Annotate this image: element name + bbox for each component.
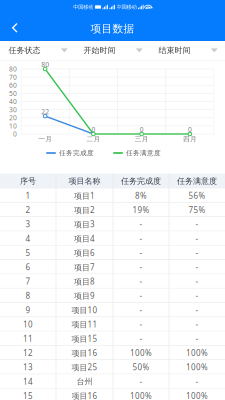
staticText: 40 — [9, 97, 17, 106]
staticText: - — [195, 219, 198, 229]
staticText: 6 — [25, 262, 30, 272]
staticText: 10 — [9, 121, 17, 130]
staticText: 5 — [25, 247, 30, 258]
staticText: 任务满意度 — [126, 149, 161, 157]
staticText: 0 — [140, 125, 144, 134]
staticText: 1 — [25, 190, 30, 201]
staticText: - — [139, 290, 142, 301]
staticText: 20 — [9, 113, 17, 122]
staticText: 2 — [25, 205, 30, 215]
staticText: 13 — [23, 362, 33, 372]
staticText: - — [195, 262, 198, 272]
staticText: 0 — [13, 130, 17, 138]
staticText: 项目16 — [71, 348, 97, 358]
staticText: 项目1 — [74, 190, 95, 201]
button[interactable]: 开始时间 — [75, 41, 150, 60]
staticText: 22 — [41, 107, 49, 116]
staticText: 台州 — [76, 377, 92, 386]
staticText: 80 — [9, 65, 17, 73]
staticText: - — [139, 219, 142, 229]
staticText: 项目16 — [71, 390, 97, 400]
staticText: 项目15 — [71, 333, 97, 344]
staticText: 4 — [25, 233, 30, 244]
staticText: 二月 — [86, 135, 100, 143]
staticText: 项目名称 — [68, 176, 100, 186]
staticText: 15 — [23, 390, 33, 400]
staticText: 一月 — [38, 135, 52, 143]
staticText: 中国移动 — [73, 4, 93, 10]
button[interactable]: 任务状态 — [0, 41, 75, 60]
staticText: 中国移动 — [117, 4, 137, 10]
staticText: 项目3 — [74, 219, 95, 229]
staticText: 100% — [130, 390, 152, 400]
staticText: 项目25 — [71, 362, 97, 372]
staticText: - — [139, 247, 142, 258]
staticText: 项目10 — [71, 305, 97, 315]
staticText: 10 — [23, 319, 33, 330]
staticText: 80 — [41, 60, 49, 69]
staticText: 12 — [23, 348, 33, 358]
staticText: 任务满意度 — [177, 176, 217, 186]
staticText: 70 — [9, 73, 17, 82]
staticText: 项目4 — [74, 233, 95, 244]
staticText: 任务完成度 — [121, 176, 161, 186]
staticText: 四月 — [183, 135, 197, 143]
staticText: 项目2 — [74, 205, 95, 215]
staticText: 项目6 — [74, 247, 95, 258]
staticText: - — [139, 276, 142, 287]
staticText: 9 — [25, 305, 30, 315]
staticText: 8% — [135, 190, 147, 201]
staticText: 100% — [186, 390, 208, 400]
staticText: 50 — [9, 89, 17, 98]
staticText: 56% — [188, 190, 205, 201]
staticText: - — [139, 319, 142, 330]
staticText: - — [195, 376, 198, 387]
staticText: - — [195, 333, 198, 344]
staticText: 任务状态 — [8, 45, 40, 55]
staticText: 14 — [23, 376, 33, 387]
staticText: 0 — [91, 125, 95, 134]
staticText: - — [195, 290, 198, 301]
staticText: - — [139, 305, 142, 315]
staticText: 开始时间 — [83, 45, 115, 55]
staticText: 项目11 — [71, 319, 97, 330]
staticText: 3 — [25, 219, 30, 229]
staticText: - — [195, 276, 198, 287]
staticText: 0 — [188, 125, 192, 134]
staticText: - — [139, 233, 142, 244]
staticText: 19% — [132, 205, 149, 215]
staticText: - — [195, 319, 198, 330]
staticText: 100% — [130, 348, 152, 358]
staticText: - — [139, 262, 142, 272]
staticText: 序号 — [20, 176, 36, 186]
staticText: 项目9 — [74, 290, 95, 301]
staticText: - — [139, 376, 142, 387]
button[interactable]: 结束时间 — [150, 41, 225, 60]
staticText: 75% — [188, 205, 205, 215]
staticText: - — [195, 233, 198, 244]
staticText: 11 — [23, 333, 33, 344]
staticText: 30 — [9, 105, 17, 114]
button[interactable]: 返回 — [2, 16, 28, 40]
staticText: 项目7 — [74, 262, 95, 272]
staticText: - — [195, 247, 198, 258]
staticText: 100% — [186, 348, 208, 358]
staticText: - — [195, 305, 198, 315]
staticText: 50% — [132, 362, 149, 372]
staticText: 项目数据 — [90, 22, 134, 35]
staticText: - — [139, 333, 142, 344]
staticText: 7 — [25, 276, 30, 287]
staticText: 60 — [9, 81, 17, 90]
staticText: 100% — [186, 362, 208, 372]
staticText: 三月 — [135, 135, 149, 143]
staticText: 8 — [25, 290, 30, 301]
staticText: 任务完成度 — [59, 149, 94, 157]
staticText: 结束时间 — [158, 45, 190, 55]
staticText: 项目8 — [74, 276, 95, 287]
